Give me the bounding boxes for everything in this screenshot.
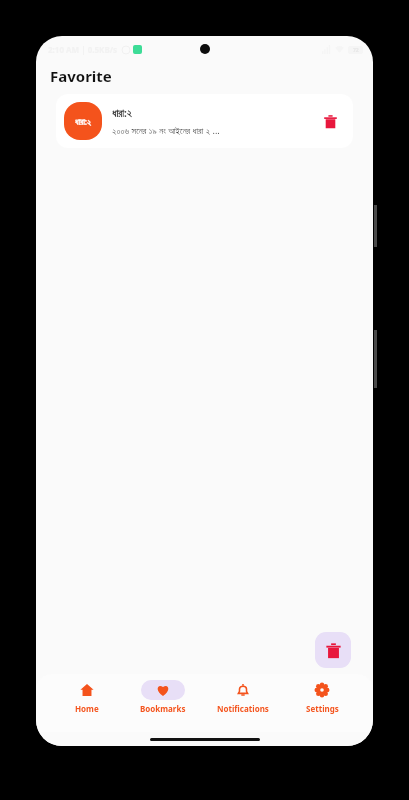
staticText: ধারা:২ [75, 116, 91, 127]
staticText: ধারা:২ [112, 106, 132, 120]
staticText: Home [75, 703, 99, 714]
button[interactable]: Delete [315, 106, 345, 136]
staticText: 2:10 AM | 0.5KB/s [48, 44, 118, 55]
button[interactable]: Delete all favorites [315, 632, 351, 668]
button[interactable]: ধারা:২ [56, 94, 353, 148]
button[interactable]: Settings [298, 680, 346, 714]
staticText: Bookmarks [140, 703, 186, 714]
button[interactable]: Home [63, 680, 111, 714]
button[interactable]: Notifications [215, 680, 271, 714]
staticText: Notifications [217, 703, 269, 714]
staticText: Favorite [50, 66, 112, 86]
staticText: 72 [353, 47, 359, 54]
staticText: ২০০৬ সনের ১৯ নং আইনের ধারা ২ ... [112, 124, 220, 136]
button[interactable]: Bookmarks [138, 680, 188, 714]
staticText: Settings [306, 703, 339, 714]
